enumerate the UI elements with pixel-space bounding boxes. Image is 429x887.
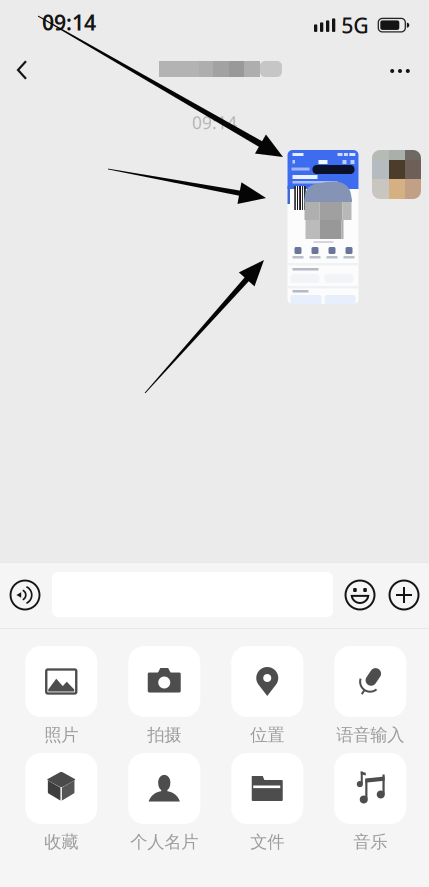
staticText: 09:14 bbox=[42, 8, 96, 36]
button[interactable]: 拍摄 bbox=[113, 646, 216, 753]
button[interactable]: Emoji bbox=[339, 564, 381, 626]
staticText: 文件 bbox=[250, 831, 284, 853]
staticText: 收藏 bbox=[44, 831, 78, 853]
staticText: 5G bbox=[341, 11, 369, 39]
staticText: 09:14 bbox=[192, 111, 237, 134]
staticText: 照片 bbox=[44, 724, 78, 746]
button[interactable]: 收藏 bbox=[10, 753, 113, 860]
button[interactable]: 语音输入 bbox=[319, 646, 422, 753]
button[interactable]: 音乐 bbox=[319, 753, 422, 860]
button[interactable]: Back bbox=[2, 48, 42, 92]
button[interactable]: More options bbox=[383, 564, 425, 626]
button[interactable]: More bbox=[378, 49, 422, 93]
button[interactable]: Voice message bbox=[1, 564, 49, 626]
button[interactable]: 个人名片 bbox=[113, 753, 216, 860]
staticText: 拍摄 bbox=[147, 724, 181, 746]
button[interactable]: 照片 bbox=[10, 646, 113, 753]
staticText: 语音输入 bbox=[336, 724, 404, 746]
button[interactable]: 位置 bbox=[216, 646, 319, 753]
staticText: 位置 bbox=[250, 724, 284, 746]
staticText: 个人名片 bbox=[130, 831, 198, 853]
button[interactable]: 文件 bbox=[216, 753, 319, 860]
staticText: 音乐 bbox=[353, 831, 387, 853]
